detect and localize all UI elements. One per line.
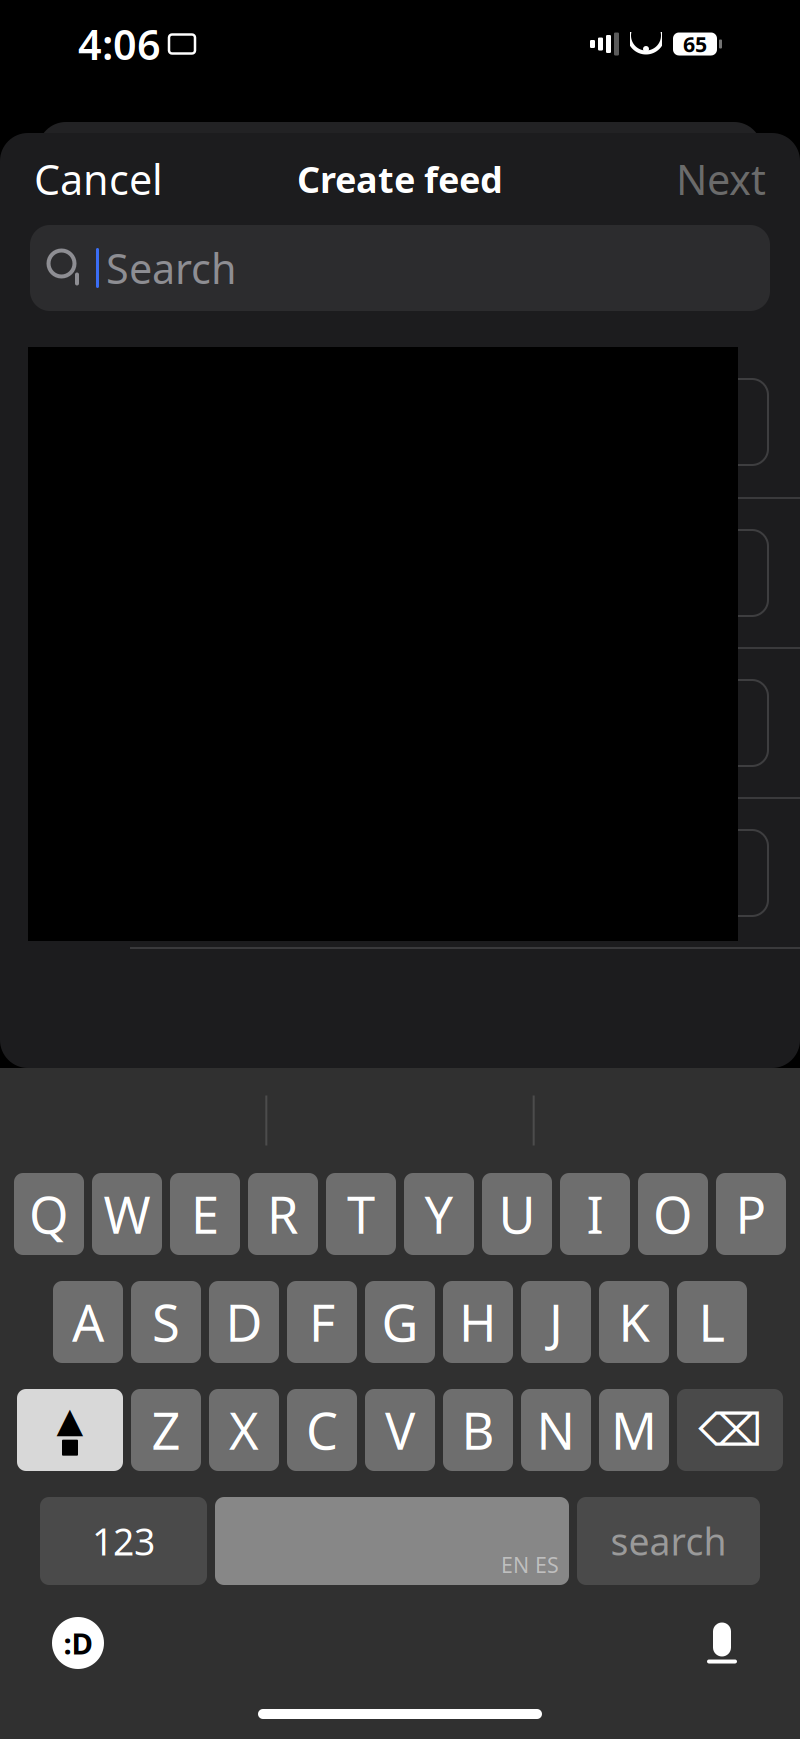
button[interactable]: C	[287, 1389, 357, 1471]
staticText: G	[381, 1288, 418, 1356]
staticText: 123	[92, 1516, 155, 1566]
button[interactable]: K	[599, 1281, 669, 1363]
button[interactable]: B	[443, 1389, 513, 1471]
button[interactable]: Emoji	[46, 1611, 110, 1675]
button[interactable]: O	[638, 1173, 708, 1255]
staticText: ▲	[56, 1400, 83, 1440]
button[interactable]: P	[716, 1173, 786, 1255]
button[interactable]: M	[599, 1389, 669, 1471]
staticText: C	[306, 1396, 338, 1464]
button[interactable]: H	[443, 1281, 513, 1363]
staticText: 65	[683, 30, 707, 58]
staticText: search	[610, 1516, 726, 1566]
button[interactable]: Delete	[677, 1389, 783, 1471]
staticText: U	[498, 1180, 535, 1248]
staticText: Next	[676, 152, 766, 206]
staticText: ⌫	[698, 1404, 762, 1456]
staticText: 4:06	[78, 17, 161, 71]
button[interactable]: R	[248, 1173, 318, 1255]
button[interactable]: G	[365, 1281, 435, 1363]
button[interactable]: Q	[14, 1173, 84, 1255]
button[interactable]: Space	[215, 1497, 569, 1585]
staticText: P	[735, 1180, 766, 1248]
button[interactable]: L	[677, 1281, 747, 1363]
staticText: E	[191, 1180, 219, 1248]
staticText: V	[385, 1396, 415, 1464]
button[interactable]: Shift	[17, 1389, 123, 1471]
staticText: R	[267, 1180, 299, 1248]
button[interactable]: D	[209, 1281, 279, 1363]
button[interactable]: V	[365, 1389, 435, 1471]
staticText: Cancel	[34, 152, 163, 206]
button[interactable]: N	[521, 1389, 591, 1471]
staticText: D	[225, 1288, 262, 1356]
button[interactable]: Search	[30, 225, 770, 311]
staticText: X	[229, 1396, 259, 1464]
staticText: :D	[63, 1623, 92, 1662]
staticText: J	[549, 1288, 563, 1356]
staticText: L	[698, 1288, 725, 1356]
staticText: T	[347, 1180, 375, 1248]
staticText: Create feed	[297, 155, 503, 203]
button[interactable]: Y	[404, 1173, 474, 1255]
staticText: Search	[106, 241, 237, 295]
staticText: S	[152, 1288, 180, 1356]
button[interactable]: Z	[131, 1389, 201, 1471]
button[interactable]: Dictation	[690, 1611, 754, 1675]
button[interactable]: W	[92, 1173, 162, 1255]
staticText: Y	[424, 1180, 453, 1248]
button[interactable]: I	[560, 1173, 630, 1255]
staticText: Z	[151, 1396, 180, 1464]
button[interactable]: X	[209, 1389, 279, 1471]
button[interactable]: J	[521, 1281, 591, 1363]
button[interactable]: 123	[40, 1497, 207, 1585]
button[interactable]: E	[170, 1173, 240, 1255]
staticText: K	[618, 1288, 649, 1356]
staticText: H	[459, 1288, 497, 1356]
staticText: O	[653, 1180, 693, 1248]
button[interactable]: F	[287, 1281, 357, 1363]
button[interactable]: A	[53, 1281, 123, 1363]
button[interactable]: Next	[672, 146, 770, 212]
staticText: B	[461, 1396, 494, 1464]
staticText: N	[536, 1396, 575, 1464]
button[interactable]: search	[577, 1497, 760, 1585]
staticText: M	[611, 1396, 657, 1464]
staticText: EN ES	[501, 1551, 559, 1579]
staticText: W	[103, 1180, 150, 1248]
staticText: Q	[29, 1180, 69, 1248]
button[interactable]: U	[482, 1173, 552, 1255]
button[interactable]: S	[131, 1281, 201, 1363]
staticText: I	[586, 1180, 603, 1248]
button[interactable]: Cancel	[30, 146, 167, 212]
staticText: F	[309, 1288, 335, 1356]
staticText: A	[72, 1288, 104, 1356]
button[interactable]: T	[326, 1173, 396, 1255]
